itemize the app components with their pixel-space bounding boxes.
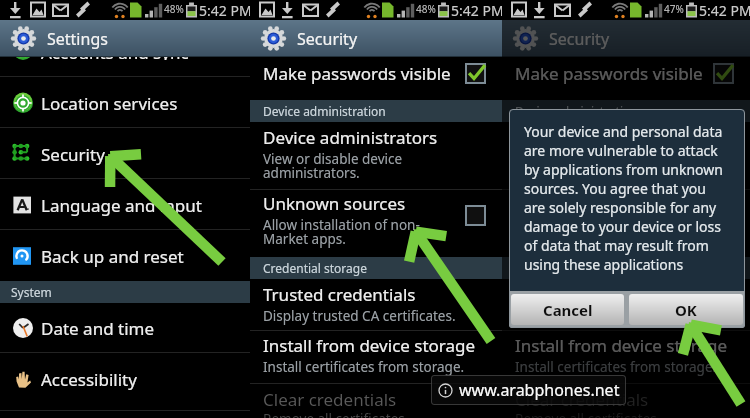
staticText: View or disable device administrators. — [263, 150, 403, 182]
staticText: 48% — [416, 2, 436, 16]
staticText: Display trusted CA certificates. — [263, 307, 456, 325]
staticText: Device administration — [263, 103, 386, 119]
staticText: Location services — [41, 92, 178, 115]
button[interactable]: Make passwords visible — [250, 57, 502, 98]
staticText: Install certificates from storage. — [515, 358, 717, 376]
staticText: sources. You agree that you — [524, 179, 706, 198]
staticText: View or disable device administrators. — [515, 150, 655, 182]
staticText: Security — [297, 28, 358, 50]
staticText: Date and time — [41, 317, 155, 340]
staticText: Security — [549, 28, 610, 50]
staticText: System — [11, 284, 52, 300]
staticText: Accounts and sync — [41, 57, 189, 60]
staticText: Back up and reset — [41, 245, 184, 268]
staticText: 48% — [164, 2, 184, 16]
button[interactable]: Trusted credentials — [250, 283, 502, 325]
staticText: Clear credentials — [515, 388, 649, 411]
button[interactable]: Device administrators — [502, 126, 750, 182]
staticText: Credential storage — [263, 260, 367, 276]
staticText: 5:42 PM — [699, 1, 750, 20]
staticText: 5:42 PM — [199, 1, 252, 20]
staticText: www.arabphones.net — [459, 379, 620, 401]
staticText: by applications from unknown — [524, 160, 723, 179]
staticText: Device administrators — [263, 126, 438, 149]
button[interactable]: OK — [629, 294, 743, 325]
button[interactable]: Language and input — [0, 180, 250, 230]
staticText: 5:42 PM — [451, 1, 504, 20]
button[interactable]: Location services — [0, 78, 250, 128]
staticText: Trusted credentials — [515, 283, 668, 306]
staticText: are solely responsible for any — [524, 198, 717, 217]
staticText: Your device and personal data — [524, 122, 723, 141]
button[interactable]: Unknown sources — [502, 192, 750, 254]
staticText: of data that may result from — [524, 236, 709, 255]
staticText: Install from device storage — [263, 334, 476, 357]
staticText: Accessibility — [41, 368, 137, 391]
staticText: OK — [675, 300, 697, 320]
staticText: Remove all certificates — [515, 410, 657, 418]
staticText: Allow installation of non- Market apps. — [515, 216, 672, 248]
button[interactable]: Cancel — [511, 294, 624, 325]
staticText: Security — [41, 143, 105, 166]
button[interactable]: Accessibility — [0, 354, 250, 404]
button[interactable]: Install from device storage — [250, 334, 502, 376]
staticText: Unknown sources — [515, 192, 658, 215]
staticText: 47% — [664, 2, 684, 16]
staticText: Install certificates from storage. — [263, 358, 465, 376]
staticText: Credential storage — [515, 260, 619, 276]
button[interactable]: Unknown sources — [250, 192, 502, 254]
staticText: Trusted credentials — [263, 283, 416, 306]
staticText: Device administration — [515, 103, 638, 119]
button[interactable]: Date and time — [0, 304, 250, 352]
staticText: Make passwords visible — [515, 62, 703, 85]
staticText: Cancel — [543, 300, 593, 320]
button[interactable]: Security — [0, 129, 250, 179]
staticText: Remove all certificates — [263, 410, 405, 418]
button[interactable]: Accounts and sync — [0, 57, 250, 76]
staticText: Allow installation of non- Market apps. — [263, 216, 420, 248]
button[interactable]: Make passwords visible — [502, 57, 750, 98]
staticText: Language and input — [41, 194, 202, 217]
button[interactable]: Device administrators — [250, 126, 502, 182]
button[interactable]: Back up and reset — [0, 231, 250, 281]
staticText: Install from device storage — [515, 334, 728, 357]
staticText: Unknown sources — [263, 192, 406, 215]
button[interactable]: Trusted credentials — [502, 283, 750, 325]
staticText: Make passwords visible — [263, 62, 451, 85]
staticText: Display trusted CA certificates. — [515, 307, 708, 325]
staticText: Device administrators — [515, 126, 690, 149]
staticText: using these applications — [524, 255, 684, 274]
button[interactable]: Install from device storage — [502, 334, 750, 376]
staticText: are more vulnerable to attack — [524, 141, 718, 160]
staticText: damage to your device or loss — [524, 217, 721, 236]
staticText: Settings — [47, 28, 108, 50]
staticText: Clear credentials — [263, 388, 397, 411]
